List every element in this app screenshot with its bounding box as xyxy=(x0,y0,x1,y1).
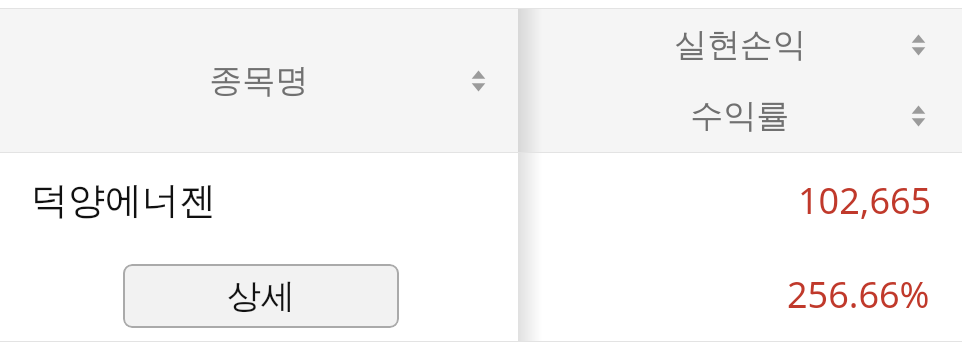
staticText: 실현손익 xyxy=(518,24,962,66)
button[interactable]: 실현손익 xyxy=(518,9,962,80)
staticText: 256.66% xyxy=(787,270,930,319)
staticText: 상세 xyxy=(227,275,295,318)
staticText: 수익률 xyxy=(518,95,962,137)
staticText: 덕양에너젠 xyxy=(31,177,216,224)
staticText: 102,665 xyxy=(798,176,932,225)
staticText: 종목명 xyxy=(0,60,518,102)
button[interactable]: 수익률 xyxy=(518,80,962,152)
button[interactable]: 상세 xyxy=(123,264,399,328)
button[interactable]: 종목명 xyxy=(0,9,518,152)
